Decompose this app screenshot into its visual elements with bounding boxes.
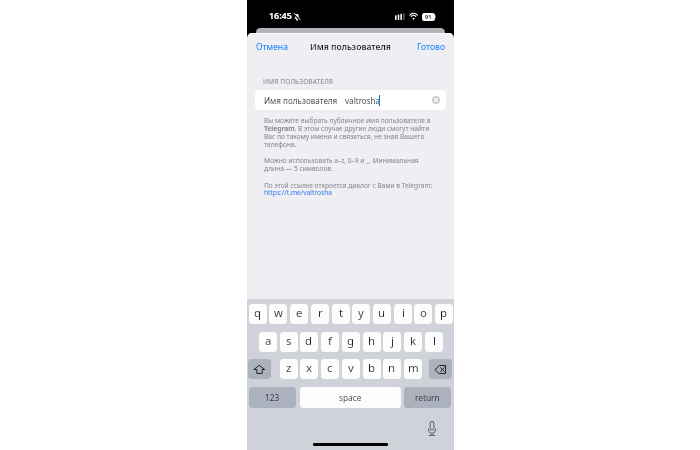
staticText: b xyxy=(368,360,376,376)
staticText: w xyxy=(274,305,283,321)
button[interactable]: z xyxy=(280,359,298,379)
button[interactable]: Имя пользователя xyxy=(255,90,446,110)
staticText: d xyxy=(305,333,313,349)
button[interactable]: e xyxy=(290,304,308,324)
staticText: g xyxy=(347,333,355,349)
button[interactable]: u xyxy=(373,304,391,324)
staticText: l xyxy=(433,333,436,349)
staticText: h xyxy=(368,333,376,349)
button[interactable]: Готово xyxy=(420,40,449,54)
button[interactable]: 123 xyxy=(249,387,296,408)
button[interactable]: a xyxy=(259,332,277,352)
staticText: https://t.me/valtrosha xyxy=(264,188,333,197)
button[interactable]: g xyxy=(342,332,360,352)
staticText: z xyxy=(286,360,292,376)
button[interactable]: v xyxy=(342,359,360,379)
staticText: Можно использовать a–z, 0–9 и _. Минимал… xyxy=(264,156,419,173)
staticText: a xyxy=(265,333,272,349)
staticText: p xyxy=(440,305,448,321)
staticText: y xyxy=(358,305,364,321)
staticText: f xyxy=(328,333,332,349)
staticText: Отмена xyxy=(256,41,288,53)
button[interactable]: c xyxy=(321,359,339,379)
staticText: o xyxy=(420,305,427,321)
button[interactable]: https://t.me/valtrosha xyxy=(264,188,333,197)
button[interactable]: b xyxy=(363,359,381,379)
staticText: i xyxy=(402,305,405,321)
staticText: space xyxy=(339,392,362,403)
button[interactable]: x xyxy=(300,359,318,379)
staticText: Имя пользователя xyxy=(264,95,338,106)
staticText: j xyxy=(391,333,394,349)
staticText: r xyxy=(318,305,323,321)
staticText: v xyxy=(348,360,354,376)
button[interactable]: r xyxy=(311,304,329,324)
button[interactable]: o xyxy=(414,304,432,324)
button[interactable]: return xyxy=(404,387,451,408)
staticText: Готово xyxy=(417,41,446,53)
staticText: valtrosha xyxy=(345,95,381,106)
button[interactable]: Backspace xyxy=(429,359,452,379)
button[interactable]: h xyxy=(363,332,381,352)
staticText: n xyxy=(388,360,396,376)
button[interactable]: space xyxy=(300,387,401,408)
button[interactable]: l xyxy=(425,332,443,352)
button[interactable]: q xyxy=(249,304,267,324)
button[interactable]: p xyxy=(435,304,453,324)
button[interactable]: i xyxy=(394,304,412,324)
staticText: Имя пользователя xyxy=(310,41,391,53)
staticText: u xyxy=(378,305,386,321)
button[interactable]: d xyxy=(300,332,318,352)
staticText: 123 xyxy=(265,392,280,403)
button[interactable]: f xyxy=(321,332,339,352)
button[interactable]: Отмена xyxy=(253,40,285,54)
button[interactable]: w xyxy=(269,304,287,324)
staticText: 16:45 xyxy=(269,9,292,21)
button[interactable]: t xyxy=(332,304,350,324)
button[interactable]: n xyxy=(383,359,401,379)
staticText: e xyxy=(296,305,303,321)
button[interactable]: m xyxy=(404,359,422,379)
staticText: k xyxy=(410,333,417,349)
button[interactable]: j xyxy=(383,332,401,352)
staticText: s xyxy=(286,333,292,349)
staticText: c xyxy=(327,360,333,376)
button[interactable]: y xyxy=(352,304,370,324)
button[interactable]: Shift xyxy=(248,359,271,379)
staticText: Вы можете выбрать публичное имя пользова… xyxy=(264,116,431,149)
staticText: return xyxy=(415,392,440,403)
staticText: 91 xyxy=(425,13,432,21)
staticText: q xyxy=(254,305,262,321)
staticText: По этой ссылке откроется диалог с Вами в… xyxy=(264,181,433,190)
staticText: t xyxy=(339,305,344,321)
button[interactable]: Clear text xyxy=(432,96,440,104)
staticText: ИМЯ ПОЛЬЗОВАТЕЛЯ xyxy=(263,77,334,86)
staticText: x xyxy=(306,360,313,376)
button[interactable]: k xyxy=(404,332,422,352)
button[interactable]: Dictate xyxy=(427,421,437,436)
button[interactable]: s xyxy=(280,332,298,352)
staticText: m xyxy=(408,360,419,376)
